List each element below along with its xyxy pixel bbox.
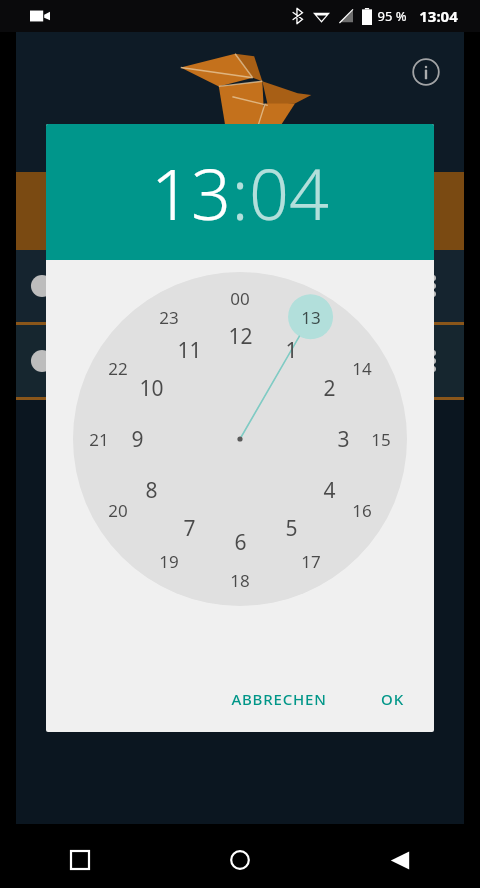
button[interactable]: More options (416, 337, 450, 385)
staticText: 00 (230, 287, 250, 310)
staticText: ABBRECHEN (231, 689, 327, 709)
staticText: 3 (337, 425, 350, 454)
button[interactable]: Toggle alarm (16, 325, 464, 397)
button[interactable]: Toggle alarm (30, 269, 74, 303)
staticText: 13:04 (419, 6, 458, 26)
staticText: 04 (249, 145, 329, 240)
staticText: 17 (301, 550, 321, 573)
button[interactable]: Toggle alarm (30, 344, 74, 378)
button[interactable]: OK (369, 679, 416, 719)
staticText: 13 (301, 306, 321, 329)
staticText: 8 (145, 476, 158, 505)
staticText: 15 (371, 428, 391, 451)
staticText: 5 (285, 514, 298, 543)
staticText: 1 (285, 336, 298, 365)
staticText: 95 % (377, 7, 407, 25)
button[interactable]: Back (320, 832, 480, 888)
button[interactable]: Info (406, 52, 446, 92)
button[interactable]: Home (160, 832, 320, 888)
button[interactable]: Toggle alarm (16, 250, 464, 322)
button[interactable]: Select hour (73, 272, 407, 606)
staticText: 21 (89, 428, 109, 451)
staticText: 9 (131, 425, 144, 454)
staticText: 2 (323, 374, 336, 403)
staticText: 22 (108, 357, 128, 380)
button[interactable]: ABBRECHEN (219, 679, 339, 719)
staticText: 16 (352, 499, 372, 522)
staticText: 19 (159, 550, 179, 573)
staticText: 18 (230, 569, 250, 592)
staticText: 7 (183, 514, 196, 543)
staticText: 12 (228, 322, 253, 351)
staticText: 4 (323, 476, 336, 505)
staticText: 23 (159, 306, 179, 329)
button[interactable]: Recent apps (0, 832, 160, 888)
staticText: 11 (177, 336, 202, 365)
button[interactable]: 04 (249, 145, 329, 240)
staticText: : (231, 145, 249, 240)
staticText: 20 (108, 499, 128, 522)
staticText: 14 (352, 357, 372, 380)
staticText: OK (381, 689, 404, 709)
button[interactable]: 13 (151, 145, 231, 240)
staticText: 13 (151, 145, 231, 240)
staticText: 10 (139, 374, 164, 403)
staticText: 6 (234, 528, 247, 557)
button[interactable]: More options (416, 262, 450, 310)
